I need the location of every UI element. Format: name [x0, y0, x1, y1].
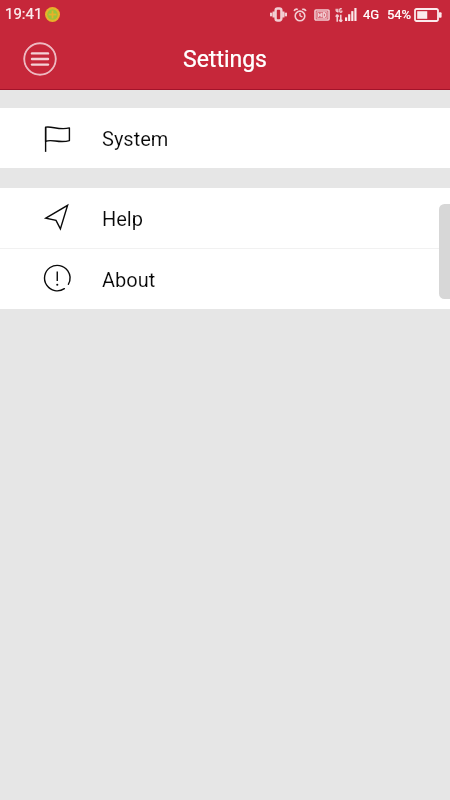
button[interactable]: About	[0, 249, 450, 309]
staticText: About	[102, 268, 156, 291]
button[interactable]: System	[0, 108, 450, 168]
staticText: Help	[102, 207, 143, 230]
button[interactable]: Help	[0, 188, 450, 248]
button[interactable]: Open navigation menu	[23, 42, 57, 76]
staticText: 4G	[363, 7, 380, 22]
staticText: System	[102, 127, 169, 150]
staticText: 54%	[387, 7, 412, 22]
staticText: Settings	[183, 46, 267, 73]
staticText: 19:41	[5, 5, 43, 23]
